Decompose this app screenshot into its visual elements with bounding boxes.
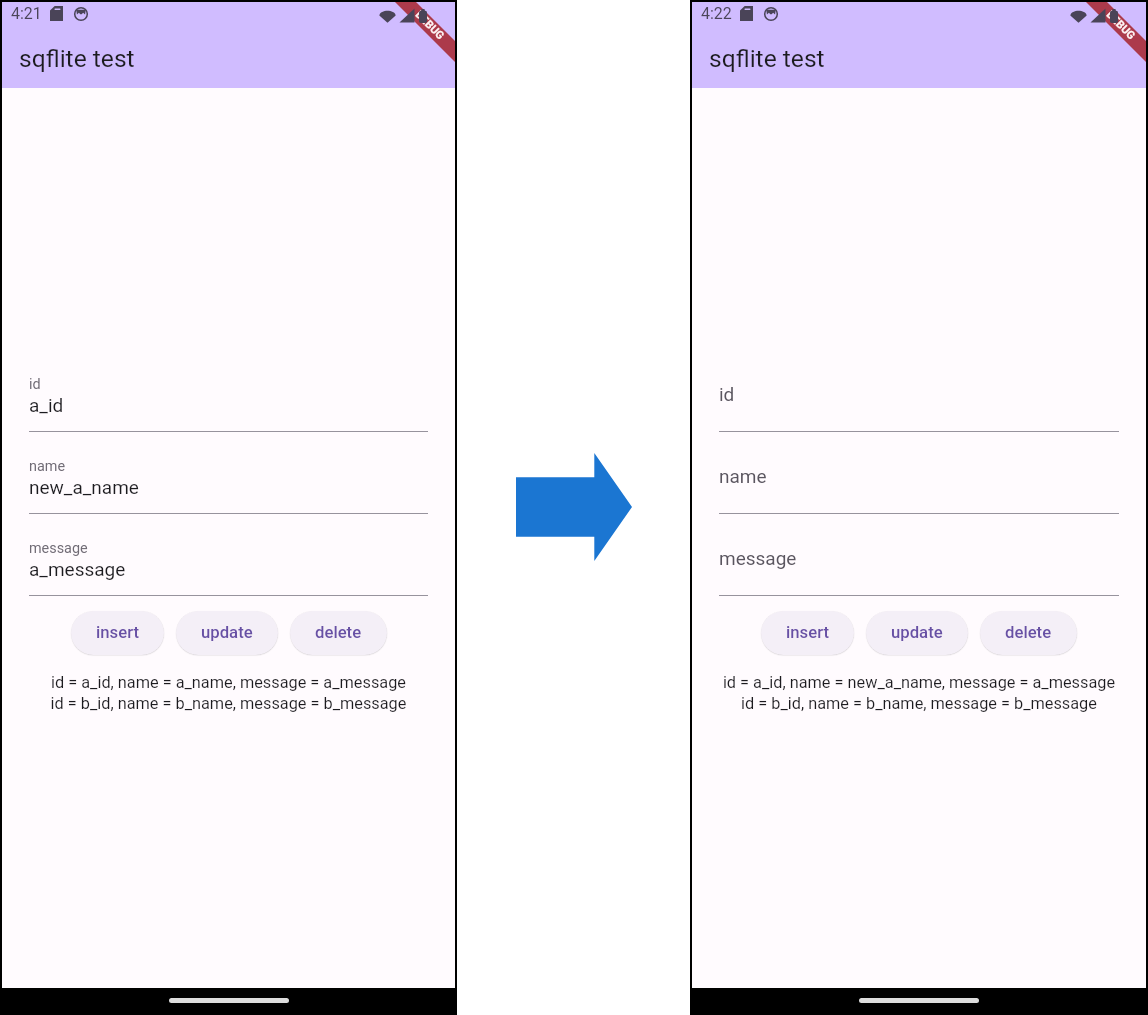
button[interactable]: name <box>692 456 1146 538</box>
staticText: name <box>29 458 66 475</box>
button[interactable]: insert <box>71 611 164 655</box>
staticText: update <box>891 623 943 643</box>
staticText: id = a_id, name = new_a_name, message = … <box>692 673 1146 692</box>
staticText: DEBUG <box>1104 8 1138 43</box>
button[interactable]: update <box>176 611 278 655</box>
staticText: message <box>719 547 797 569</box>
staticText: update <box>201 623 253 643</box>
staticText: a_id <box>29 394 64 416</box>
staticText: new_a_name <box>29 476 139 498</box>
staticText: id = a_id, name = a_name, message = a_me… <box>2 673 455 692</box>
staticText: sqflite test <box>709 44 825 73</box>
staticText: DEBUG <box>413 8 447 43</box>
button[interactable]: delete <box>290 611 387 655</box>
staticText: message <box>29 540 88 557</box>
staticText: insert <box>786 623 829 643</box>
staticText: 4:21 <box>11 4 42 23</box>
button[interactable]: id <box>2 374 455 456</box>
button[interactable]: insert <box>761 611 854 655</box>
staticText: 4:22 <box>701 4 732 23</box>
staticText: name <box>719 465 767 487</box>
staticText: id <box>719 383 735 405</box>
staticText: delete <box>315 623 362 643</box>
button[interactable]: update <box>866 611 968 655</box>
staticText: id = b_id, name = b_name, message = b_me… <box>2 694 455 713</box>
staticText: id <box>29 376 41 393</box>
button[interactable]: delete <box>980 611 1077 655</box>
button[interactable]: message <box>2 538 455 593</box>
staticText: a_message <box>29 558 126 580</box>
staticText: sqflite test <box>19 44 135 73</box>
other: Transforms into <box>516 453 632 561</box>
button[interactable]: id <box>692 374 1146 456</box>
staticText: insert <box>96 623 139 643</box>
staticText: delete <box>1005 623 1052 643</box>
staticText: id = b_id, name = b_name, message = b_me… <box>692 694 1146 713</box>
button[interactable]: message <box>692 538 1146 593</box>
button[interactable]: name <box>2 456 455 538</box>
